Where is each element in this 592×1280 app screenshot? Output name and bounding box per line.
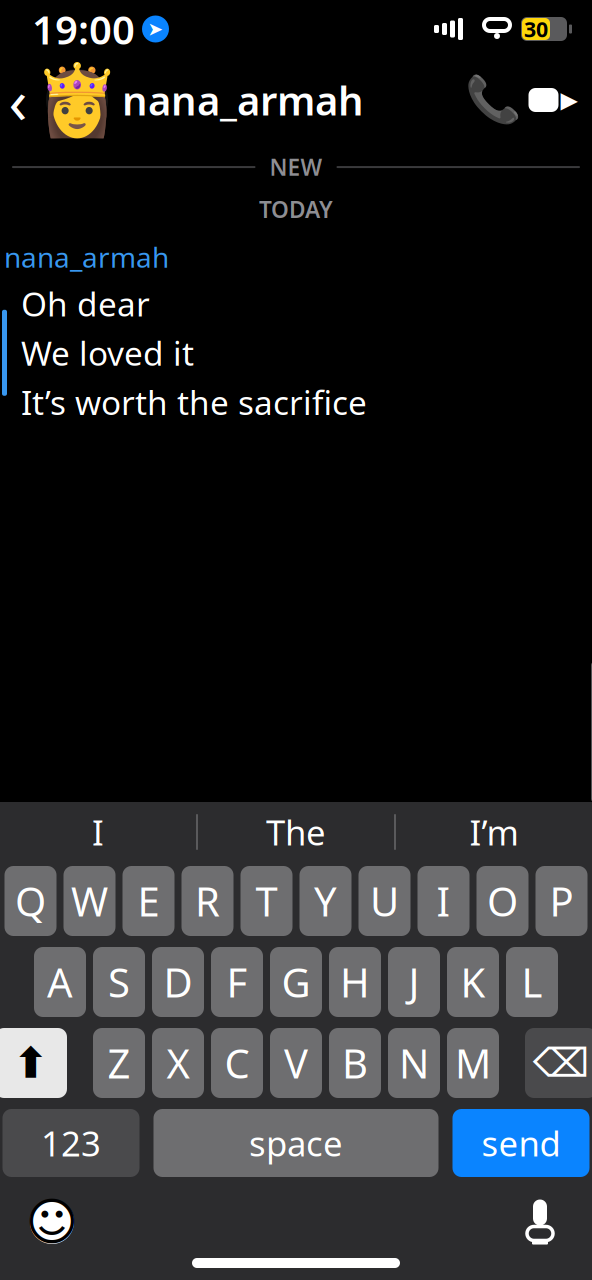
staticText: A <box>47 955 73 1008</box>
staticText: ‹ <box>8 59 27 141</box>
button[interactable]: send <box>452 1109 589 1177</box>
button[interactable]: W <box>63 866 115 936</box>
staticText: ⌫ <box>532 1040 589 1086</box>
button[interactable]: Q <box>4 866 56 936</box>
staticText: It’s worth the sacrifice <box>21 380 367 424</box>
button[interactable]: Back <box>0 58 46 142</box>
staticText: X <box>166 1036 189 1089</box>
button[interactable]: T <box>240 866 292 936</box>
staticText: J <box>408 955 419 1008</box>
staticText: Z <box>107 1036 130 1089</box>
staticText: D <box>163 955 192 1008</box>
staticText: O <box>487 874 518 927</box>
button[interactable]: B <box>329 1028 381 1098</box>
button[interactable]: 123 <box>2 1109 139 1177</box>
staticText: H <box>340 955 370 1008</box>
staticText: I <box>92 809 104 855</box>
button[interactable]: F <box>211 947 263 1017</box>
button[interactable]: Emoji keyboard <box>22 1194 82 1250</box>
button[interactable]: A <box>34 947 86 1017</box>
button[interactable]: I <box>417 866 469 936</box>
button[interactable]: X <box>152 1028 204 1098</box>
button[interactable]: K <box>447 947 499 1017</box>
staticText: B <box>342 1036 368 1089</box>
staticText: T <box>255 874 277 927</box>
button[interactable]: Y <box>299 866 351 936</box>
staticText: The <box>266 809 326 855</box>
button[interactable]: V <box>270 1028 322 1098</box>
staticText: G <box>281 955 310 1008</box>
staticText: E <box>137 874 159 927</box>
staticText: Q <box>15 874 46 927</box>
button[interactable]: I <box>0 802 196 862</box>
button[interactable]: 👸 <box>46 69 364 131</box>
staticText: We loved it <box>21 331 194 375</box>
button[interactable]: Z <box>93 1028 145 1098</box>
staticText: 30 <box>524 15 548 43</box>
button[interactable]: N <box>388 1028 440 1098</box>
staticText: space <box>249 1120 343 1166</box>
staticText: P <box>549 874 573 927</box>
button[interactable]: I’m <box>396 802 592 862</box>
staticText: ☺ <box>25 1193 78 1251</box>
staticText: TODAY <box>259 194 333 224</box>
staticText: F <box>226 955 247 1008</box>
button[interactable]: U <box>358 866 410 936</box>
button[interactable]: space <box>153 1109 438 1177</box>
staticText: 📞 <box>465 74 521 126</box>
button[interactable]: O <box>476 866 528 936</box>
staticText: M <box>455 1036 491 1089</box>
button[interactable]: Dictation <box>510 1194 570 1250</box>
button[interactable]: S <box>93 947 145 1017</box>
button[interactable]: Video call <box>522 58 584 142</box>
staticText: ➤ <box>147 18 163 40</box>
staticText: 👸 <box>34 60 120 140</box>
staticText: I’m <box>469 809 518 855</box>
staticText: nana_armah <box>4 238 169 275</box>
staticText: U <box>370 874 399 927</box>
staticText: send <box>481 1120 560 1166</box>
staticText: C <box>224 1036 249 1089</box>
button[interactable]: R <box>181 866 233 936</box>
staticText: I <box>436 874 450 927</box>
button[interactable]: L <box>506 947 558 1017</box>
staticText: 19:00 <box>32 2 135 55</box>
staticText: L <box>521 955 542 1008</box>
button[interactable]: M <box>447 1028 499 1098</box>
button[interactable]: J <box>388 947 440 1017</box>
button[interactable]: Delete <box>525 1028 592 1098</box>
staticText: R <box>195 874 220 927</box>
staticText: Oh dear <box>21 281 150 326</box>
button[interactable]: D <box>152 947 204 1017</box>
button[interactable]: H <box>329 947 381 1017</box>
button[interactable]: G <box>270 947 322 1017</box>
button[interactable]: P <box>535 866 587 936</box>
staticText: NEW <box>269 152 322 182</box>
staticText: S <box>108 955 130 1008</box>
staticText: Y <box>314 874 337 927</box>
staticText: V <box>284 1036 308 1089</box>
button[interactable]: Audio call <box>464 58 522 142</box>
button[interactable]: Shift <box>0 1028 67 1098</box>
staticText: ▶ <box>560 87 577 113</box>
staticText: N <box>399 1036 429 1089</box>
staticText: K <box>460 955 485 1008</box>
staticText: 123 <box>41 1120 101 1166</box>
staticText: nana_armah <box>122 73 364 126</box>
button[interactable]: C <box>211 1028 263 1098</box>
button[interactable]: E <box>122 866 174 936</box>
staticText: ⬆ <box>13 1039 49 1087</box>
button[interactable]: The <box>198 802 394 862</box>
staticText: W <box>71 874 108 927</box>
